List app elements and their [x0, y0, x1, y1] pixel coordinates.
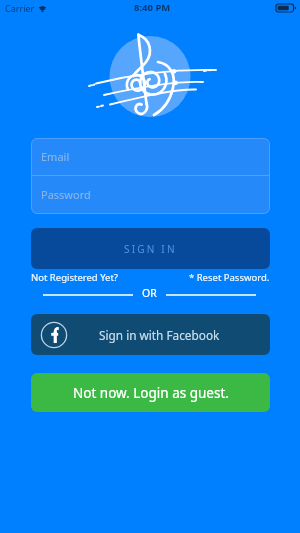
staticText: Password: [41, 187, 91, 202]
button[interactable]: Facebook: [31, 314, 270, 355]
staticText: 8:40 PM: [134, 1, 171, 14]
staticText: SIGN IN: [124, 242, 177, 256]
staticText: Not now. Login as guest.: [73, 384, 229, 402]
button[interactable]: * Reset Password.: [189, 271, 270, 284]
staticText: Email: [41, 149, 70, 164]
button[interactable]: SIGN IN: [31, 228, 270, 269]
staticText: Sign in with Facebook: [99, 327, 220, 343]
staticText: OR: [142, 286, 157, 300]
other: Facebook: [40, 321, 68, 349]
button[interactable]: Email: [31, 138, 270, 175]
button[interactable]: Not now. Login as guest.: [31, 373, 270, 412]
button[interactable]: Password: [31, 176, 270, 213]
staticText: Carrier: [5, 2, 35, 14]
button[interactable]: Not Registered Yet?: [31, 271, 118, 284]
